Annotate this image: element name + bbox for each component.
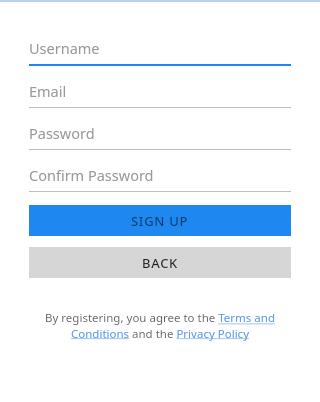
button[interactable]: Terms and Conditions and Privacy Policy xyxy=(37,310,283,341)
staticText: BACK xyxy=(142,254,179,272)
staticText: Email xyxy=(29,81,67,101)
staticText: Confirm Password xyxy=(29,165,154,185)
staticText: SIGN UP xyxy=(131,212,189,230)
button[interactable]: BACK xyxy=(29,247,291,278)
staticText: Password xyxy=(29,123,95,143)
button[interactable]: Username xyxy=(29,35,291,66)
button[interactable]: Password xyxy=(29,120,291,150)
button[interactable]: SIGN UP xyxy=(29,205,291,236)
button[interactable]: Confirm Password xyxy=(29,162,291,192)
button[interactable]: Email xyxy=(29,78,291,108)
staticText: By registering, you agree to the Terms a… xyxy=(37,310,283,341)
staticText: Username xyxy=(29,38,100,58)
